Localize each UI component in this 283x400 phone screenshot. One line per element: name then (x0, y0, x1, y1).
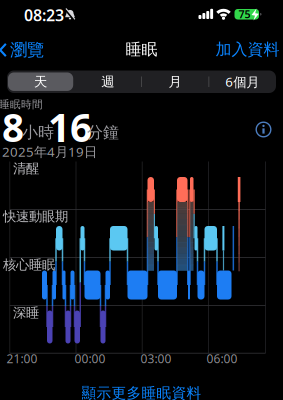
staticText: 週 (101, 73, 114, 90)
staticText: 6個月 (225, 73, 259, 90)
staticText: 瀏覽 (10, 39, 44, 61)
staticText: 分鐘 (87, 123, 119, 142)
staticText: 深睡 (13, 304, 39, 321)
staticText: 06:00 (206, 350, 237, 366)
staticText: 03:00 (140, 350, 171, 366)
staticText: 快速動眼期 (3, 208, 68, 225)
staticText: 16 (48, 101, 92, 153)
button[interactable]: 天 (7, 71, 74, 93)
button[interactable]: More info (254, 120, 272, 138)
button[interactable]: 加入資料 (215, 40, 279, 59)
staticText: 08:23 (24, 4, 64, 26)
staticText: 睡眠時間 (0, 98, 43, 111)
button[interactable]: 月 (142, 71, 209, 93)
staticText: 顯示更多睡眠資料 (81, 384, 201, 400)
staticText: 核心睡眠 (3, 256, 55, 273)
staticText: 睡眠 (125, 40, 157, 59)
staticText: 小時 (22, 123, 54, 142)
staticText: 00:00 (74, 350, 105, 366)
staticText: 天 (34, 73, 47, 90)
staticText: 清醒 (13, 160, 39, 177)
staticText: 8 (2, 101, 24, 153)
staticText: 月 (169, 73, 182, 90)
staticText: 加入資料 (215, 40, 279, 59)
staticText: 2025年4月19日 (2, 143, 97, 160)
button[interactable]: 瀏覽 (0, 39, 44, 61)
button[interactable]: 週 (74, 71, 141, 93)
staticText: 21:00 (6, 350, 37, 366)
staticText: 75 (238, 7, 250, 21)
button[interactable]: 顯示更多睡眠資料 (81, 384, 201, 400)
button[interactable]: 6個月 (209, 71, 276, 93)
